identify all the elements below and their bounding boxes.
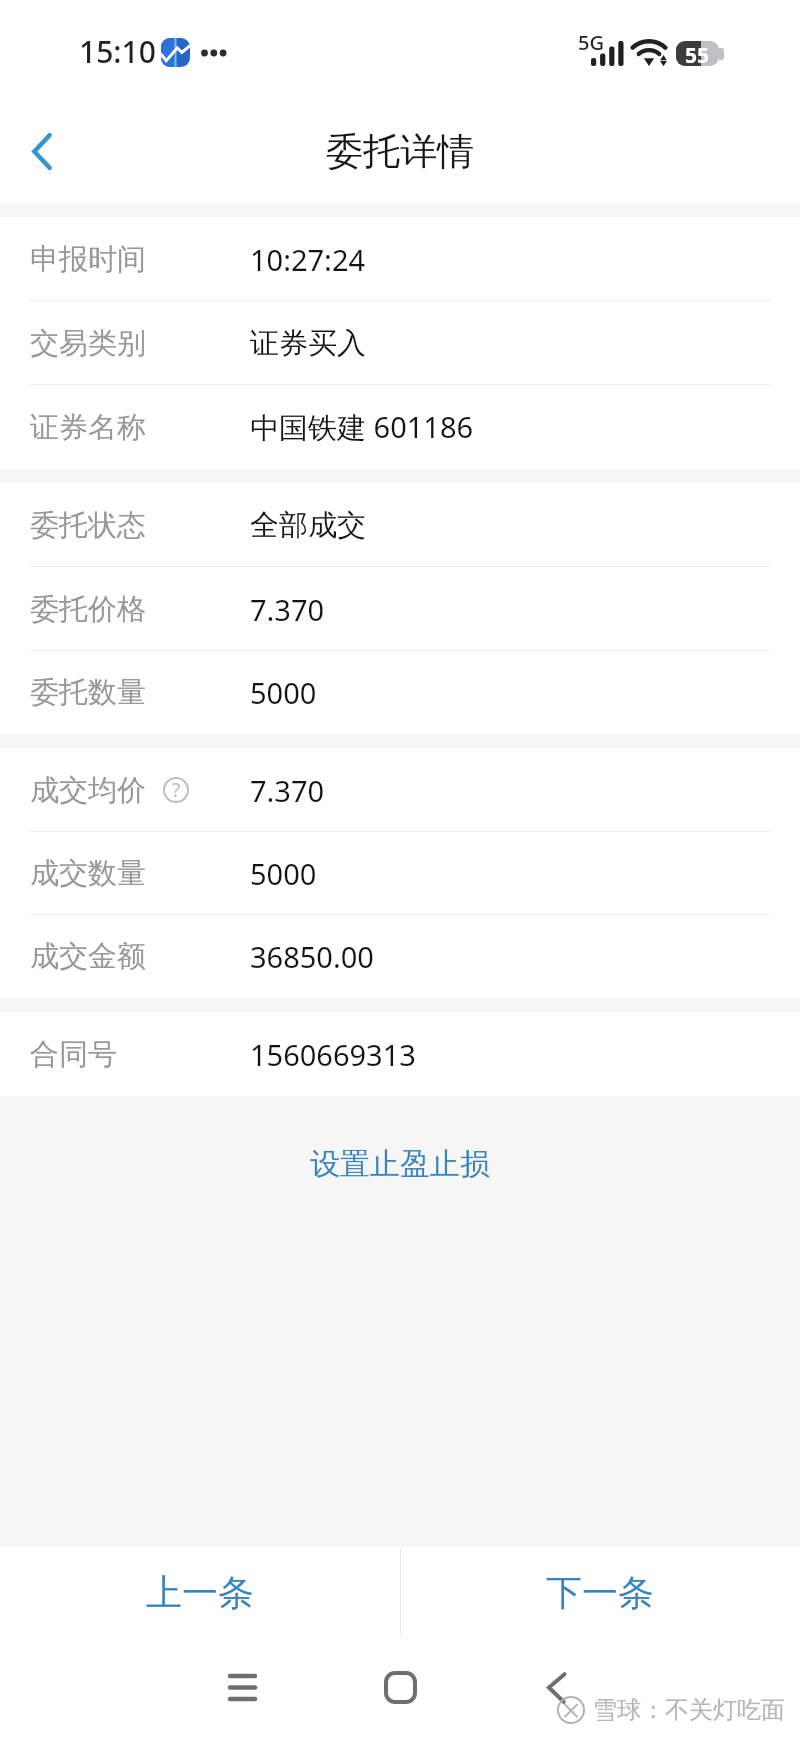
- staticText: 15:10: [79, 31, 156, 72]
- staticText: 证券买入: [250, 325, 366, 362]
- staticText: 交易类别: [30, 325, 146, 362]
- staticText: 合同号: [30, 1036, 117, 1073]
- button[interactable]: 申报时间: [0, 217, 800, 301]
- staticText: 申报时间: [30, 241, 146, 278]
- staticText: 7.370: [250, 771, 325, 810]
- button[interactable]: 证券名称: [0, 385, 800, 469]
- button[interactable]: 委托数量: [0, 651, 800, 734]
- staticText: 成交金额: [30, 938, 146, 975]
- staticText: 成交均价: [30, 772, 146, 809]
- staticText: 委托数量: [30, 674, 146, 711]
- staticText: 下一条: [546, 1570, 654, 1615]
- staticText: 上一条: [146, 1570, 254, 1615]
- staticText: 全部成交: [250, 507, 366, 544]
- staticText: 证券名称: [30, 409, 146, 446]
- button[interactable]: Recent apps: [202, 1647, 282, 1727]
- button[interactable]: 委托状态: [0, 483, 800, 567]
- staticText: ?: [172, 777, 181, 803]
- staticText: 1560669313: [250, 1035, 416, 1074]
- button[interactable]: 成交数量: [0, 832, 800, 915]
- button[interactable]: 交易类别: [0, 301, 800, 385]
- button[interactable]: 设置止盈止损: [286, 1135, 514, 1193]
- staticText: 5G: [578, 29, 604, 56]
- button[interactable]: Home: [360, 1647, 440, 1727]
- staticText: 7.370: [250, 590, 325, 629]
- button[interactable]: Back: [0, 100, 90, 203]
- staticText: 设置止盈止损: [310, 1145, 490, 1183]
- button[interactable]: Back: [516, 1647, 596, 1727]
- staticText: 5000: [250, 854, 317, 893]
- staticText: 雪球：不关灯吃面: [593, 1695, 785, 1725]
- staticText: 10:27:24: [250, 240, 366, 279]
- staticText: 委托状态: [30, 507, 146, 544]
- staticText: 委托价格: [30, 591, 146, 628]
- staticText: 36850.00: [250, 937, 374, 976]
- button[interactable]: 上一条: [0, 1547, 400, 1637]
- staticText: 55: [685, 41, 710, 66]
- staticText: 中国铁建 601186: [250, 407, 474, 447]
- button[interactable]: 成交均价: [0, 748, 800, 832]
- button[interactable]: 委托价格: [0, 567, 800, 651]
- staticText: 委托详情: [326, 128, 474, 175]
- staticText: 5000: [250, 673, 317, 712]
- button[interactable]: 成交金额: [0, 915, 800, 998]
- button[interactable]: 下一条: [400, 1547, 800, 1637]
- button[interactable]: 合同号: [0, 1012, 800, 1096]
- staticText: 成交数量: [30, 855, 146, 892]
